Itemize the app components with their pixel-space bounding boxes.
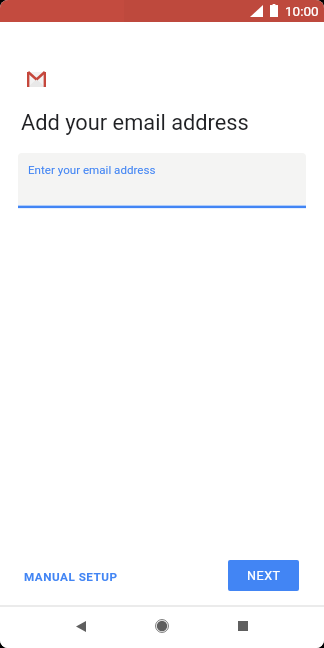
staticText: Enter your email address [28,163,156,177]
button[interactable]: Back [59,604,103,648]
staticText: NEXT [247,568,281,583]
button[interactable]: Enter your email address [18,153,306,209]
button[interactable]: NEXT [228,560,299,591]
button[interactable]: MANUAL SETUP [14,564,128,590]
staticText: MANUAL SETUP [24,570,118,584]
button[interactable]: Recent apps [221,604,265,648]
button[interactable]: Home [140,604,184,648]
staticText: 10:00 [285,3,319,19]
staticText: Add your email address [21,110,249,136]
